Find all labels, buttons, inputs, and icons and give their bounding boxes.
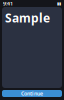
button[interactable]: Continue bbox=[2, 90, 62, 97]
staticText: Continue bbox=[21, 90, 43, 97]
staticText: ▮▮ bbox=[57, 1, 61, 6]
staticText: Sample bbox=[5, 10, 50, 26]
staticText: 9:41 bbox=[3, 0, 13, 7]
